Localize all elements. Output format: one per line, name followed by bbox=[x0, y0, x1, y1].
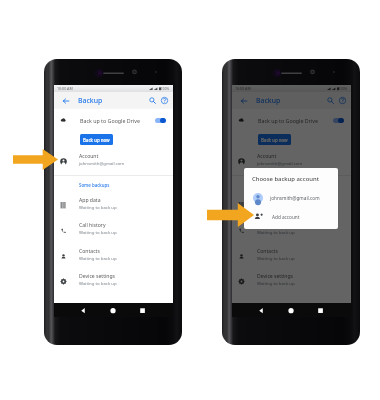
staticText: Backup bbox=[256, 96, 281, 105]
button[interactable]: Search bbox=[325, 95, 335, 105]
button[interactable]: Search bbox=[147, 95, 157, 105]
button[interactable]: App data bbox=[232, 193, 351, 215]
staticText: Waiting to back up bbox=[79, 280, 117, 286]
staticText: Back up now bbox=[83, 137, 110, 143]
staticText: App data bbox=[257, 197, 279, 204]
button[interactable]: Back bbox=[60, 95, 71, 106]
button[interactable]: App data bbox=[54, 193, 173, 215]
button[interactable]: Device settings bbox=[232, 269, 351, 291]
button[interactable]: Call history bbox=[54, 218, 173, 240]
button[interactable]: Back up now bbox=[258, 134, 291, 145]
staticText: Account bbox=[257, 153, 277, 160]
button[interactable]: Call history bbox=[232, 218, 351, 240]
button[interactable]: Add account bbox=[244, 209, 338, 227]
staticText: Waiting to back up bbox=[257, 280, 295, 286]
staticText: Back up now bbox=[261, 137, 288, 143]
staticText: johnsmith@gmail.com bbox=[270, 195, 320, 201]
button[interactable]: Back up to Google Drive bbox=[54, 112, 173, 128]
button[interactable]: Device settings bbox=[54, 269, 173, 291]
button[interactable]: Back bbox=[238, 95, 249, 106]
staticText: Choose backup account bbox=[252, 175, 319, 183]
button[interactable]: Contacts bbox=[232, 244, 351, 266]
button[interactable]: Help bbox=[337, 95, 347, 105]
button[interactable]: johnsmith@gmail.com bbox=[244, 190, 338, 208]
staticText: 10:00 AM bbox=[235, 86, 251, 91]
staticText: Waiting to back up bbox=[79, 229, 117, 235]
button[interactable]: Account bbox=[232, 149, 351, 171]
staticText: 100% bbox=[339, 87, 348, 91]
staticText: Add account bbox=[272, 214, 300, 220]
staticText: Waiting to back up bbox=[257, 229, 295, 235]
staticText: Waiting to back up bbox=[257, 255, 295, 261]
staticText: johnsmith@gmail.com bbox=[79, 160, 125, 166]
button[interactable]: Account bbox=[54, 149, 173, 171]
staticText: johnsmith@gmail.com bbox=[257, 160, 303, 166]
button[interactable]: Contacts bbox=[54, 244, 173, 266]
staticText: Contacts bbox=[79, 248, 100, 255]
staticText: 10:00 AM bbox=[57, 86, 73, 91]
staticText: Waiting to back up bbox=[257, 204, 295, 210]
staticText: Contacts bbox=[257, 248, 278, 255]
staticText: Waiting to back up bbox=[79, 204, 117, 210]
button[interactable]: Some backups bbox=[79, 182, 110, 188]
button[interactable]: Help bbox=[159, 95, 169, 105]
staticText: Device settings bbox=[79, 273, 116, 280]
staticText: Back up to Google Drive bbox=[258, 117, 318, 124]
staticText: Call history bbox=[79, 222, 106, 229]
staticText: Account bbox=[79, 153, 99, 160]
staticText: Backup bbox=[78, 96, 103, 105]
staticText: App data bbox=[79, 197, 101, 204]
staticText: 100% bbox=[161, 87, 170, 91]
button[interactable]: Back up to Google Drive bbox=[232, 112, 351, 128]
staticText: Device settings bbox=[257, 273, 294, 280]
staticText: Waiting to back up bbox=[79, 255, 117, 261]
staticText: Back up to Google Drive bbox=[80, 117, 140, 124]
button[interactable]: Back up now bbox=[80, 134, 113, 145]
